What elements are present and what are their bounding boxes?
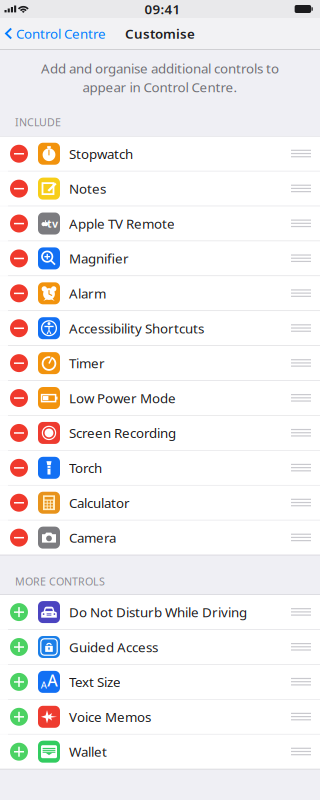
staticText: Text Size <box>69 673 121 691</box>
button[interactable]: Timer <box>0 346 320 380</box>
button[interactable]: Calculator <box>0 486 320 520</box>
staticText: appear in Control Centre. <box>82 78 237 96</box>
button[interactable]: A <box>0 665 320 699</box>
button[interactable]: Notes <box>0 171 320 206</box>
staticText: Wallet <box>69 743 107 760</box>
staticText: A <box>41 679 47 691</box>
button[interactable]: Stopwatch <box>0 137 320 171</box>
staticText: Accessibility Shortcuts <box>69 319 204 337</box>
button[interactable]: Torch <box>0 451 320 485</box>
staticText: Torch <box>69 459 102 477</box>
staticText: Guided Access <box>69 638 158 656</box>
staticText: Screen Recording <box>69 424 176 442</box>
button[interactable]: tv <box>0 206 320 241</box>
button[interactable]: Low Power Mode <box>0 381 320 415</box>
button[interactable]: Control Centre <box>0 21 106 46</box>
staticText: Alarm <box>69 284 106 302</box>
staticText: Customise <box>125 25 195 42</box>
staticText: Magnifier <box>69 250 129 267</box>
button[interactable]: Magnifier <box>0 241 320 276</box>
staticText: Calculator <box>69 494 130 512</box>
staticText: MORE CONTROLS <box>15 574 105 588</box>
staticText: Stopwatch <box>69 145 133 163</box>
button[interactable]: Camera <box>0 520 320 555</box>
button[interactable]: Voice Memos <box>0 700 320 734</box>
staticText: A <box>47 670 57 691</box>
button[interactable]: Guided Access <box>0 630 320 664</box>
staticText: tv <box>47 217 58 231</box>
staticText: Camera <box>69 529 116 546</box>
staticText: Control Centre <box>16 25 106 42</box>
staticText: Low Power Mode <box>69 389 176 407</box>
staticText: Apple TV Remote <box>69 215 175 232</box>
button[interactable]: Alarm <box>0 276 320 310</box>
staticText: Notes <box>69 180 106 197</box>
button[interactable]: Wallet <box>0 734 320 769</box>
button[interactable]: Accessibility Shortcuts <box>0 311 320 345</box>
button[interactable]: Do Not Disturb While Driving <box>0 595 320 629</box>
staticText: Timer <box>69 354 105 372</box>
staticText: Voice Memos <box>69 708 151 726</box>
staticText: 09:41 <box>144 0 180 18</box>
staticText: Do Not Disturb While Driving <box>69 603 247 621</box>
staticText: INCLUDE <box>15 115 61 129</box>
button[interactable]: Screen Recording <box>0 416 320 450</box>
staticText: Add and organise additional controls to <box>41 59 279 77</box>
